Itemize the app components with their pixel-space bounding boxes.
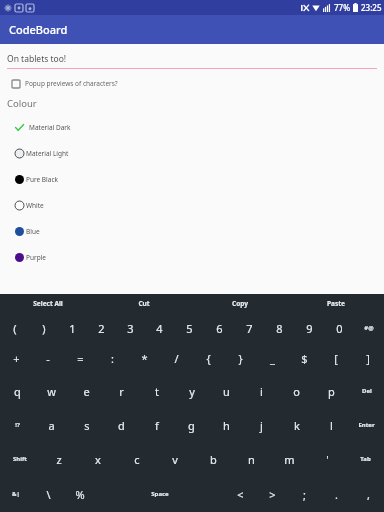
staticText: $ bbox=[301, 351, 308, 366]
button[interactable]: , bbox=[352, 476, 384, 512]
button[interactable]: 9 bbox=[294, 313, 324, 343]
button[interactable]: ( bbox=[0, 313, 29, 343]
staticText: x bbox=[95, 452, 101, 467]
button[interactable]: { bbox=[192, 343, 224, 374]
button[interactable]: w bbox=[34, 374, 69, 408]
staticText: Copy bbox=[232, 299, 248, 308]
button[interactable]: &| bbox=[0, 476, 32, 512]
button[interactable]: u bbox=[209, 374, 244, 408]
button[interactable]: \ bbox=[32, 476, 64, 512]
button[interactable]: Purple bbox=[0, 244, 384, 270]
staticText: t bbox=[155, 384, 159, 399]
button[interactable]: h bbox=[209, 408, 244, 442]
button[interactable]: = bbox=[64, 343, 96, 374]
button[interactable]: Material Light bbox=[0, 140, 384, 166]
button[interactable]: Enter bbox=[349, 408, 384, 442]
button[interactable]: b bbox=[194, 442, 232, 476]
button[interactable]: r bbox=[104, 374, 139, 408]
button[interactable]: 5 bbox=[174, 313, 204, 343]
button[interactable]: t bbox=[139, 374, 174, 408]
button[interactable]: z bbox=[39, 442, 78, 476]
staticText: g bbox=[188, 418, 195, 433]
button[interactable]: Space bbox=[96, 476, 224, 512]
button[interactable]: Tab bbox=[346, 442, 384, 476]
button[interactable]: f bbox=[139, 408, 174, 442]
staticText: 7 bbox=[246, 321, 253, 336]
button[interactable]: m bbox=[270, 442, 308, 476]
button[interactable]: ] bbox=[352, 343, 384, 374]
button[interactable]: Popup previews of characters? bbox=[0, 78, 384, 89]
button[interactable]: Blue bbox=[0, 218, 384, 244]
button[interactable]: Del bbox=[349, 374, 384, 408]
button[interactable]: On tablets too! bbox=[0, 53, 384, 69]
button[interactable]: } bbox=[224, 343, 256, 374]
button[interactable]: Copy bbox=[192, 294, 288, 313]
staticText: ] bbox=[366, 351, 370, 366]
button[interactable]: j bbox=[244, 408, 279, 442]
button[interactable]: White bbox=[0, 192, 384, 218]
button[interactable]: Select All bbox=[0, 294, 96, 313]
button[interactable]: 4 bbox=[145, 313, 174, 343]
button[interactable]: 3 bbox=[116, 313, 145, 343]
button[interactable]: 1 bbox=[58, 313, 87, 343]
staticText: 1 bbox=[69, 321, 76, 336]
button[interactable]: c bbox=[117, 442, 156, 476]
button[interactable]: 8 bbox=[264, 313, 294, 343]
button[interactable]: o bbox=[279, 374, 314, 408]
button[interactable]: ' bbox=[308, 442, 346, 476]
button[interactable]: s bbox=[69, 408, 104, 442]
button[interactable]: 2 bbox=[87, 313, 116, 343]
button[interactable]: n bbox=[232, 442, 270, 476]
button[interactable]: a bbox=[34, 408, 69, 442]
button[interactable]: - bbox=[32, 343, 64, 374]
staticText: k bbox=[294, 418, 300, 433]
button[interactable]: q bbox=[0, 374, 34, 408]
staticText: 77% bbox=[334, 2, 350, 13]
staticText: 23:25 bbox=[361, 2, 382, 13]
button[interactable]: + bbox=[0, 343, 32, 374]
button[interactable]: !? bbox=[0, 408, 34, 442]
staticText: y bbox=[189, 384, 195, 399]
staticText: ; bbox=[303, 487, 306, 502]
button[interactable]: Shift bbox=[0, 442, 39, 476]
staticText: < bbox=[237, 487, 244, 502]
staticText: } bbox=[238, 351, 243, 366]
button[interactable]: $ bbox=[288, 343, 320, 374]
button[interactable]: : bbox=[96, 343, 128, 374]
staticText: = bbox=[77, 351, 84, 366]
button[interactable]: 6 bbox=[204, 313, 234, 343]
button[interactable]: l bbox=[314, 408, 349, 442]
button[interactable]: [ bbox=[320, 343, 352, 374]
staticText: Purple bbox=[26, 253, 46, 262]
button[interactable]: * bbox=[128, 343, 160, 374]
button[interactable]: / bbox=[160, 343, 192, 374]
button[interactable]: . bbox=[320, 476, 352, 512]
button[interactable]: Cut bbox=[96, 294, 192, 313]
button[interactable]: d bbox=[104, 408, 139, 442]
button[interactable]: p bbox=[314, 374, 349, 408]
button[interactable]: e bbox=[69, 374, 104, 408]
staticText: 5 bbox=[186, 321, 193, 336]
button[interactable]: g bbox=[174, 408, 209, 442]
staticText: Colour bbox=[7, 97, 37, 110]
button[interactable]: 0 bbox=[324, 313, 354, 343]
button[interactable]: ; bbox=[288, 476, 320, 512]
button[interactable]: v bbox=[156, 442, 194, 476]
button[interactable]: y bbox=[174, 374, 209, 408]
button[interactable]: _ bbox=[256, 343, 288, 374]
button[interactable]: % bbox=[64, 476, 96, 512]
button[interactable]: Pure Black bbox=[0, 166, 384, 192]
button[interactable]: x bbox=[78, 442, 117, 476]
button[interactable]: < bbox=[224, 476, 256, 512]
staticText: &| bbox=[12, 490, 20, 498]
button[interactable]: 7 bbox=[234, 313, 264, 343]
button[interactable]: > bbox=[256, 476, 288, 512]
button[interactable]: Paste bbox=[288, 294, 384, 313]
button[interactable]: #@ bbox=[354, 313, 384, 343]
staticText: Paste bbox=[327, 299, 345, 308]
staticText: / bbox=[174, 351, 179, 366]
button[interactable]: i bbox=[244, 374, 279, 408]
button[interactable]: Selected bbox=[0, 114, 384, 140]
button[interactable]: k bbox=[279, 408, 314, 442]
button[interactable]: ) bbox=[29, 313, 58, 343]
